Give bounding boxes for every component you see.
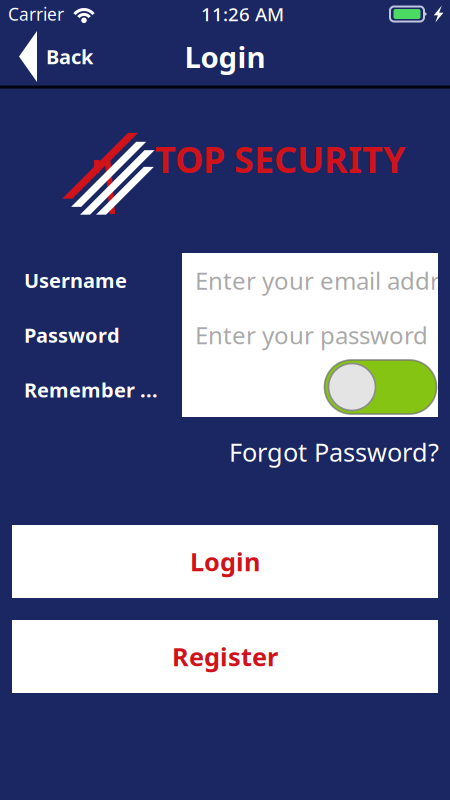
staticText: Login bbox=[184, 37, 265, 76]
button[interactable]: Back bbox=[0, 28, 107, 85]
button[interactable]: Login bbox=[12, 525, 438, 598]
staticText: Password bbox=[24, 322, 120, 348]
staticText: TOP SECURITY bbox=[155, 135, 406, 183]
staticText: Forgot Password? bbox=[229, 435, 439, 469]
button[interactable]: Register bbox=[12, 620, 438, 693]
staticText: Username bbox=[24, 267, 127, 294]
staticText: Remember ... bbox=[24, 376, 158, 403]
staticText: Login bbox=[190, 545, 260, 578]
button[interactable]: Forgot Password? bbox=[209, 433, 439, 471]
staticText: 11:26 AM bbox=[201, 2, 284, 26]
staticText: Back bbox=[46, 43, 93, 70]
staticText: Enter your password bbox=[195, 319, 428, 351]
staticText: Register bbox=[172, 640, 278, 673]
staticText: Enter your email address bbox=[195, 264, 450, 296]
staticText: Carrier bbox=[8, 2, 64, 25]
